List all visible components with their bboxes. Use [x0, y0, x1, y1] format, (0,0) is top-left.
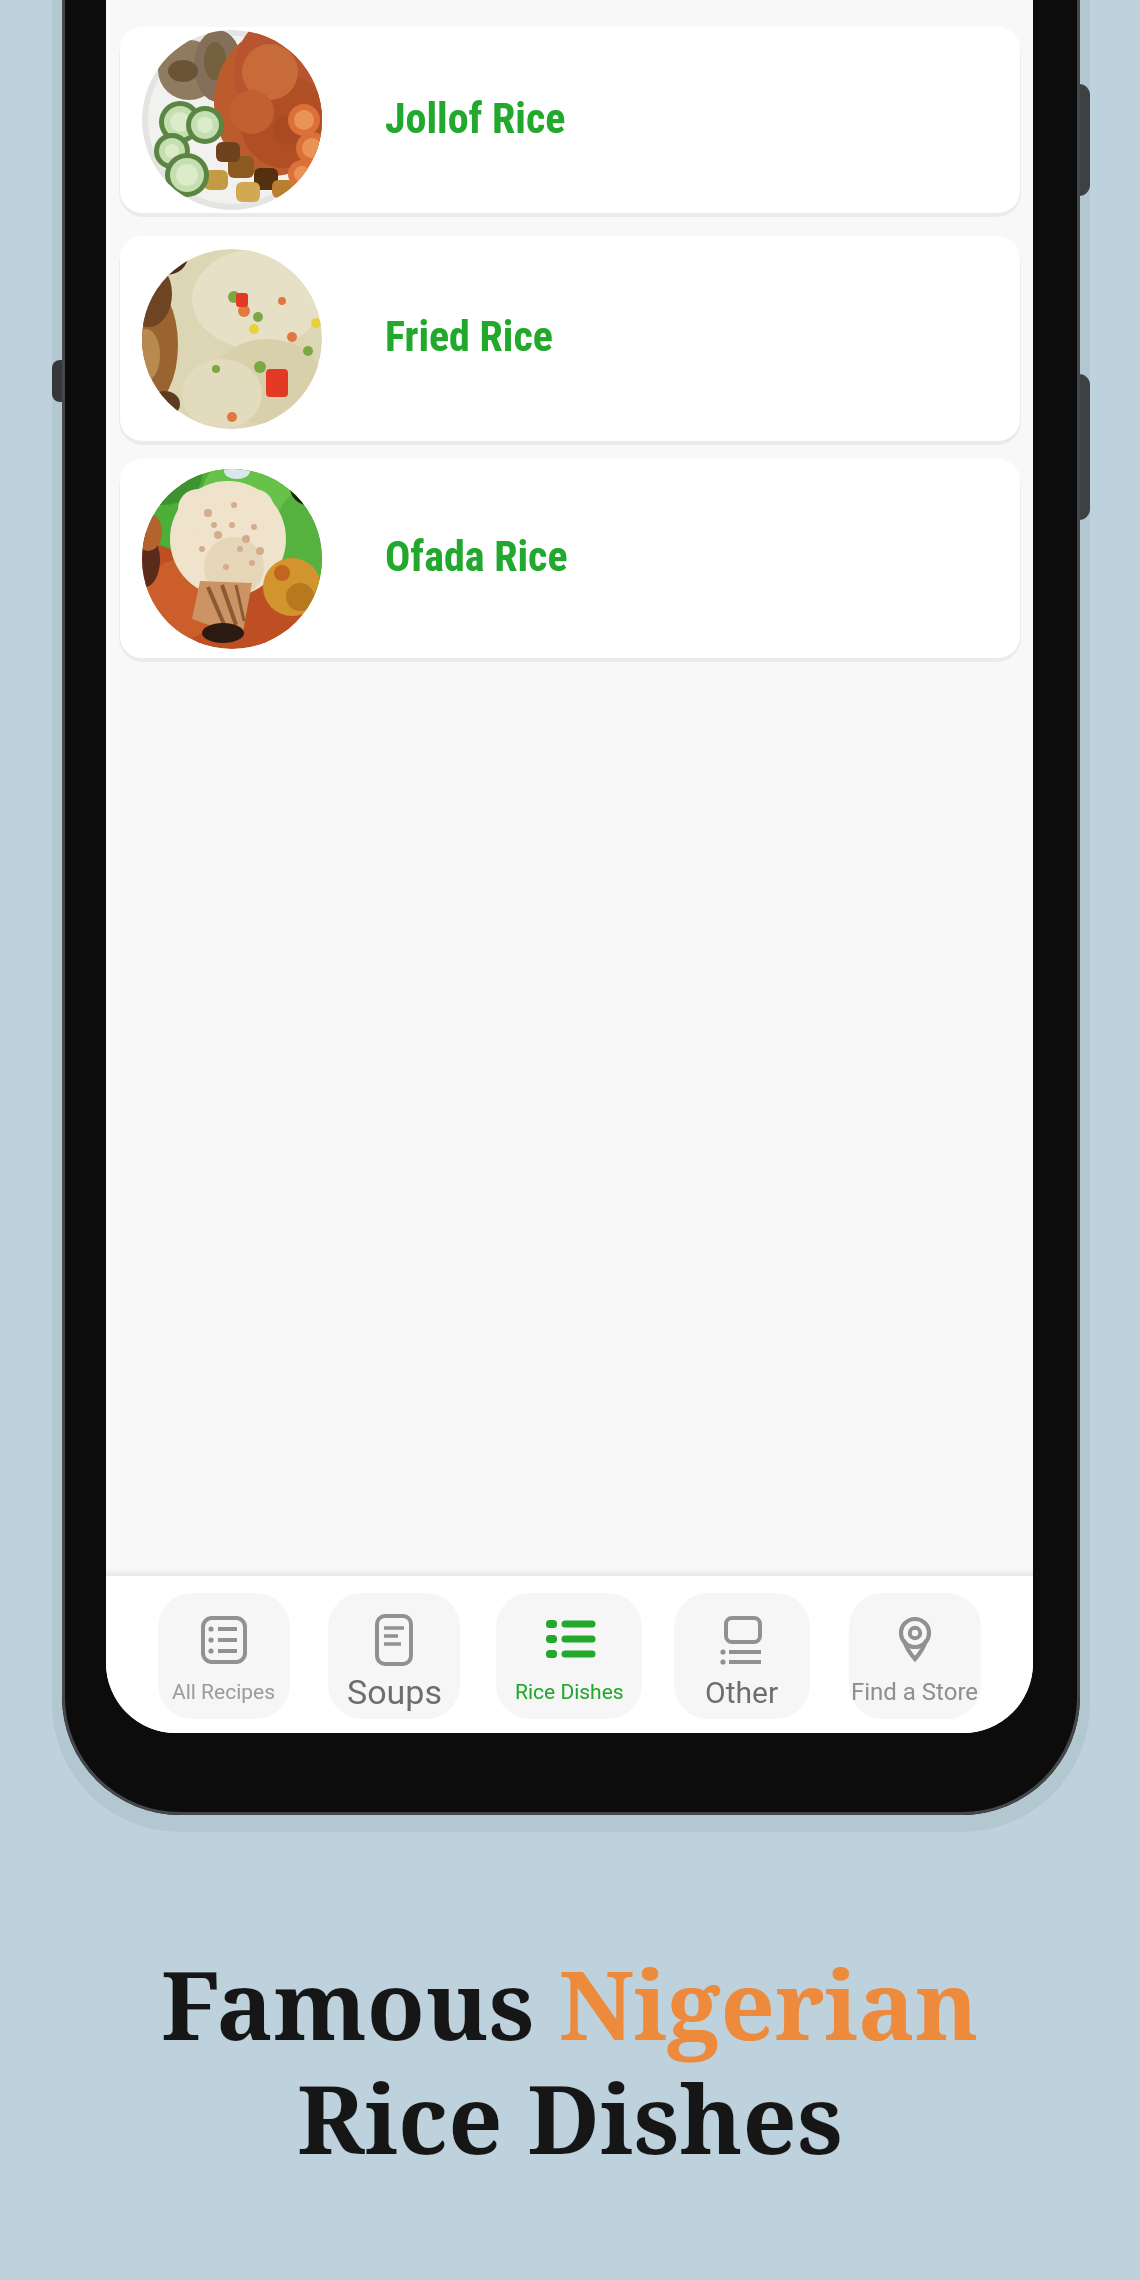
button[interactable]: Ofada Rice [120, 459, 1020, 658]
staticText: Jollof Rice [385, 94, 566, 143]
staticText: Soups [347, 1672, 442, 1712]
button[interactable] [496, 1593, 642, 1719]
button[interactable]: Jollof Rice [120, 27, 1020, 213]
staticText: Ofada Rice [385, 532, 568, 581]
staticText: Find a Store [851, 1678, 979, 1706]
staticText: Rice Dishes [297, 2052, 843, 2181]
button[interactable]: Fried Rice [120, 236, 1020, 441]
button[interactable] [328, 1593, 460, 1719]
staticText: Famous Nigerian [161, 1938, 979, 2067]
staticText: Rice Dishes [515, 1680, 624, 1705]
staticText: All Recipes [172, 1680, 276, 1705]
button[interactable] [674, 1593, 810, 1719]
staticText: Other [705, 1675, 779, 1710]
button[interactable] [158, 1593, 290, 1719]
staticText: Fried Rice [385, 312, 553, 361]
button[interactable] [849, 1593, 981, 1719]
